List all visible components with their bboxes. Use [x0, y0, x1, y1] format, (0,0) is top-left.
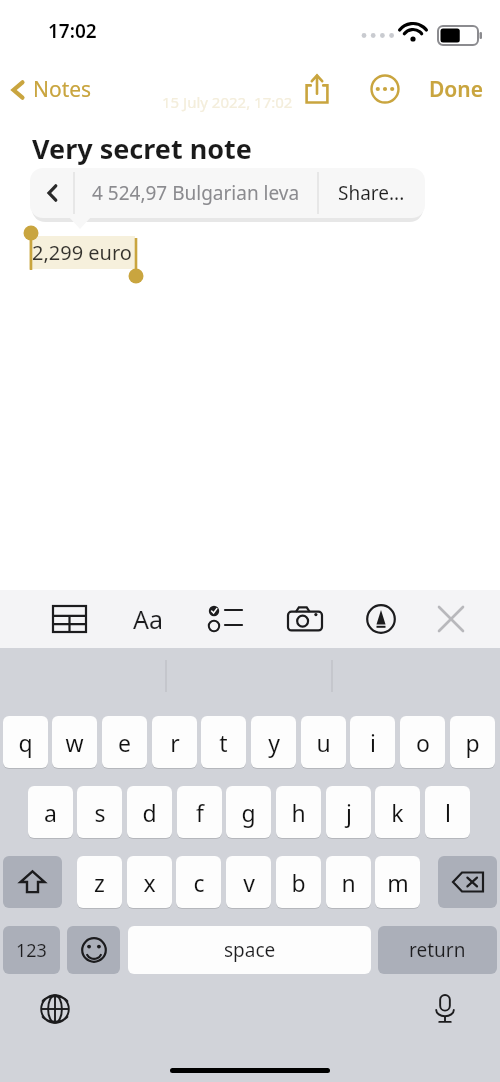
staticText: d	[142, 797, 157, 828]
button[interactable]: Emoji	[67, 926, 120, 974]
button[interactable]: g	[226, 786, 271, 838]
staticText: Done	[429, 75, 484, 104]
button[interactable]: o	[400, 716, 445, 768]
button[interactable]: b	[276, 856, 321, 908]
staticText: Very secret note	[32, 130, 252, 167]
button[interactable]: More options	[363, 67, 407, 111]
button[interactable]: i	[350, 716, 395, 768]
button[interactable]: 4 524,97 Bulgarian leva	[74, 168, 318, 218]
staticText: m	[387, 867, 409, 898]
staticText: 15 July 2022, 17:02	[162, 92, 293, 112]
staticText: r	[170, 727, 180, 758]
staticText: g	[241, 797, 256, 828]
button[interactable]: Close keyboard	[428, 590, 474, 648]
staticText: Notes	[33, 75, 92, 104]
button[interactable]: n	[326, 856, 371, 908]
staticText: z	[94, 867, 105, 898]
button[interactable]: 123	[3, 926, 60, 974]
staticText: f	[196, 797, 204, 828]
button[interactable]: Backspace	[438, 856, 497, 908]
button[interactable]: Markup	[358, 590, 404, 648]
button[interactable]: Notes	[0, 69, 100, 110]
staticText: space	[224, 937, 276, 963]
staticText: j	[346, 797, 352, 828]
button[interactable]: d	[127, 786, 172, 838]
button[interactable]: t	[201, 716, 246, 768]
staticText: l	[445, 797, 451, 828]
button[interactable]: a	[28, 786, 73, 838]
button[interactable]: s	[77, 786, 122, 838]
button[interactable]: p	[450, 716, 495, 768]
staticText: w	[65, 727, 84, 758]
button[interactable]: r	[152, 716, 197, 768]
button[interactable]: Change keyboard	[32, 986, 78, 1032]
staticText: v	[243, 867, 255, 898]
button[interactable]: Dictate	[422, 986, 468, 1032]
button[interactable]: Back	[30, 168, 74, 218]
staticText: 17:02	[48, 18, 97, 44]
button[interactable]: u	[301, 716, 346, 768]
button[interactable]: l	[425, 786, 470, 838]
staticText: x	[143, 867, 156, 898]
staticText: n	[341, 867, 356, 898]
button[interactable]: c	[176, 856, 221, 908]
staticText: 123	[16, 938, 47, 963]
staticText: a	[44, 797, 57, 828]
staticText: 4 524,97 Bulgarian leva	[92, 180, 300, 206]
button[interactable]: z	[77, 856, 122, 908]
staticText: i	[370, 727, 376, 758]
button[interactable]: Camera	[282, 590, 328, 648]
staticText: s	[94, 797, 106, 828]
button[interactable]: Format text	[124, 590, 172, 648]
staticText: k	[391, 797, 404, 828]
button[interactable]: Share...	[318, 168, 425, 218]
staticText: h	[291, 797, 306, 828]
button[interactable]: h	[276, 786, 321, 838]
button[interactable]: k	[375, 786, 420, 838]
staticText: p	[465, 727, 480, 758]
staticText: o	[416, 727, 430, 758]
button[interactable]: f	[177, 786, 222, 838]
button[interactable]: m	[375, 856, 420, 908]
staticText: return	[409, 937, 466, 963]
staticText: c	[193, 867, 205, 898]
staticText: y	[268, 727, 280, 758]
button[interactable]: v	[226, 856, 271, 908]
button[interactable]: Share	[295, 67, 339, 111]
button[interactable]: Done	[413, 67, 500, 112]
staticText: e	[118, 727, 131, 758]
button[interactable]: Checklist	[202, 590, 248, 648]
button[interactable]: Shift	[3, 856, 62, 908]
button[interactable]: w	[52, 716, 97, 768]
staticText: t	[219, 727, 228, 758]
staticText: Aa	[133, 602, 164, 636]
button[interactable]: space	[128, 926, 371, 974]
button[interactable]: Table	[46, 590, 92, 648]
staticText: q	[18, 727, 33, 758]
staticText: b	[291, 867, 306, 898]
button[interactable]: x	[127, 856, 172, 908]
button[interactable]: return	[378, 926, 497, 974]
button[interactable]: j	[326, 786, 371, 838]
button[interactable]: q	[3, 716, 48, 768]
staticText: Share...	[338, 180, 405, 206]
button[interactable]: y	[251, 716, 296, 768]
staticText: u	[316, 727, 331, 758]
staticText: 2,299 euro	[32, 239, 132, 266]
button[interactable]: e	[102, 716, 147, 768]
